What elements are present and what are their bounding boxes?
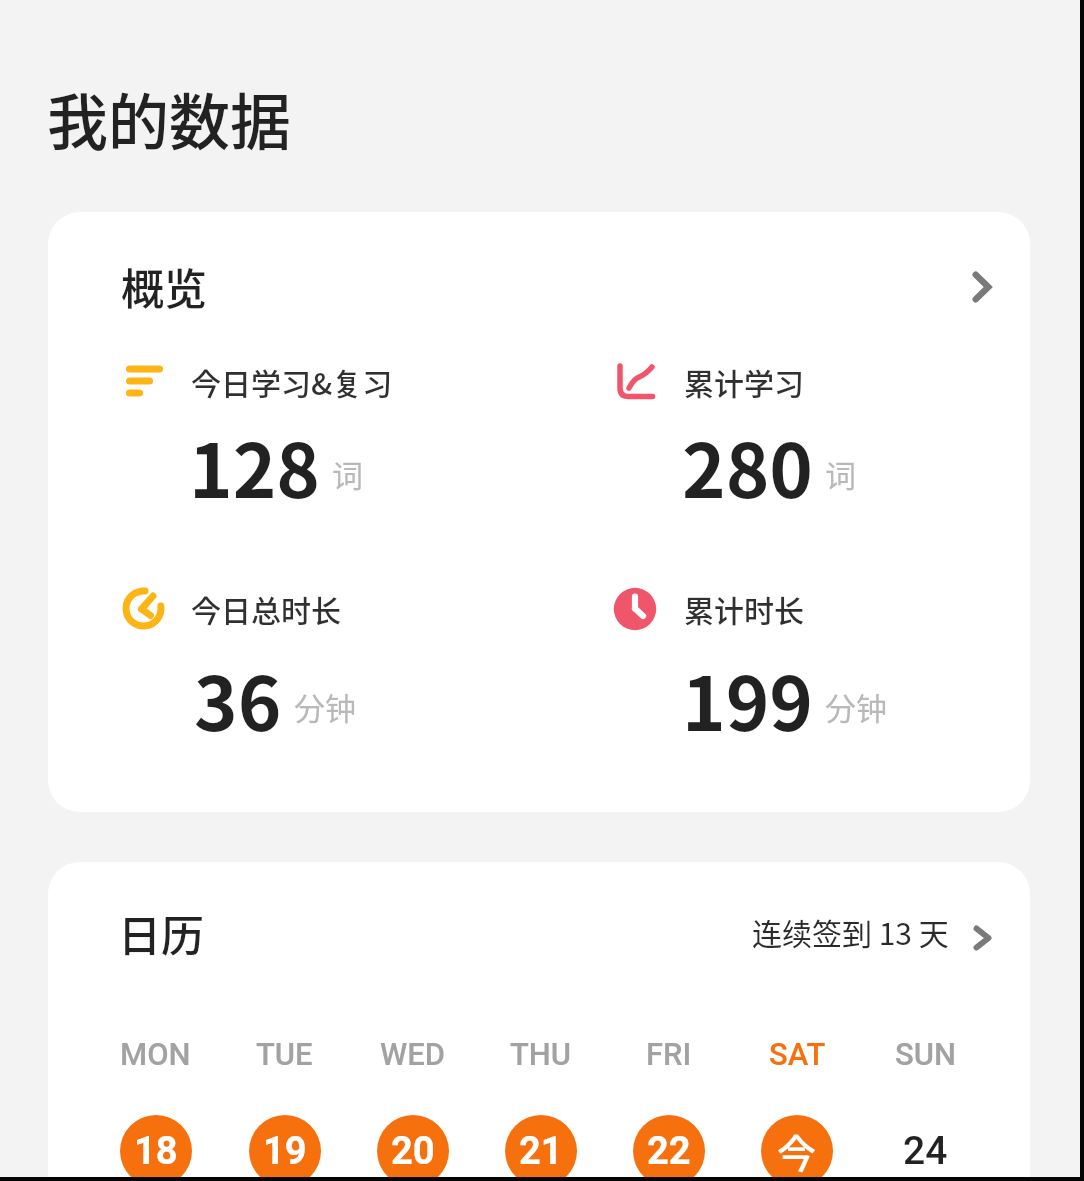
button[interactable]: 18	[120, 1115, 192, 1177]
staticText: 24	[903, 1128, 948, 1174]
button[interactable]: 22	[633, 1115, 705, 1177]
staticText: 今日总时长	[191, 587, 341, 630]
button[interactable]: 概览	[48, 212, 1030, 812]
button[interactable]: 日历	[48, 862, 1030, 1177]
staticText: TUE	[256, 1036, 313, 1072]
staticText: SAT	[769, 1036, 826, 1072]
staticText: 日历	[118, 902, 204, 962]
staticText: 连续签到 13 天	[752, 910, 949, 953]
staticText: THU	[510, 1036, 572, 1072]
staticText: 21	[519, 1129, 563, 1174]
staticText: 19	[263, 1129, 307, 1174]
button[interactable]: 19	[249, 1115, 321, 1177]
button[interactable]: 20	[377, 1115, 449, 1177]
staticText: 今日学习&复习	[191, 360, 393, 403]
staticText: 累计时长	[684, 587, 804, 630]
staticText: 36	[194, 645, 282, 752]
button[interactable]: 21	[505, 1115, 577, 1177]
staticText: SUN	[895, 1036, 956, 1072]
staticText: 分钟	[825, 684, 887, 729]
staticText: 128	[189, 412, 320, 519]
staticText: 我的数据	[47, 74, 292, 162]
staticText: 22	[647, 1129, 691, 1174]
staticText: 词	[332, 451, 363, 496]
staticText: 累计学习	[684, 360, 804, 403]
staticText: 词	[825, 451, 856, 496]
staticText: 概览	[121, 255, 207, 315]
staticText: MON	[120, 1036, 191, 1072]
staticText: FRI	[646, 1036, 692, 1072]
staticText: 分钟	[294, 684, 356, 729]
staticText: WED	[380, 1036, 446, 1072]
staticText: 今	[777, 1123, 817, 1177]
staticText: 20	[391, 1129, 435, 1174]
button[interactable]: 连续签到 13 天	[752, 910, 992, 953]
button[interactable]: 今	[761, 1115, 833, 1177]
staticText: 280	[682, 412, 813, 519]
staticText: 199	[682, 645, 813, 752]
staticText: 18	[134, 1129, 178, 1174]
